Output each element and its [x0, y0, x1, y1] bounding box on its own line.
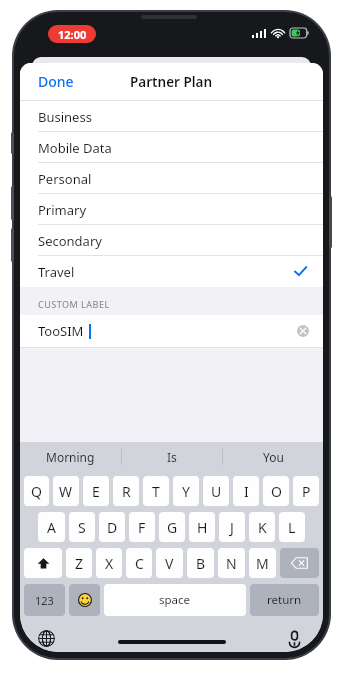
button[interactable]: H — [189, 512, 215, 542]
staticText: Q — [31, 482, 42, 501]
button[interactable]: Z — [66, 548, 92, 578]
staticText: T — [152, 482, 160, 501]
staticText: Is — [167, 449, 177, 465]
button[interactable]: 123 — [24, 584, 65, 616]
staticText: return — [267, 592, 302, 608]
staticText: 123 — [35, 593, 54, 608]
button[interactable]: Clear text — [297, 325, 309, 337]
button[interactable]: S — [69, 512, 95, 542]
button[interactable]: U — [203, 476, 229, 506]
staticText: Done — [38, 72, 74, 91]
button[interactable]: Q — [24, 476, 49, 506]
staticText: F — [138, 518, 146, 537]
staticText: A — [47, 518, 56, 537]
button[interactable]: N — [218, 548, 245, 578]
staticText: E — [92, 482, 100, 501]
button[interactable]: V — [156, 548, 183, 578]
staticText: Personal — [38, 170, 92, 188]
staticText: M — [256, 554, 269, 573]
staticText: W — [59, 482, 73, 501]
button[interactable]: D — [99, 512, 125, 542]
button[interactable]: Mobile Data — [20, 132, 323, 163]
button[interactable]: K — [249, 512, 275, 542]
staticText: P — [302, 482, 311, 501]
button[interactable]: Dictation — [286, 630, 303, 647]
staticText: 12:00 — [58, 27, 87, 42]
button[interactable]: TooSIM — [20, 315, 323, 347]
staticText: Z — [75, 554, 84, 573]
button[interactable]: Travel — [20, 256, 323, 287]
button[interactable]: O — [263, 476, 289, 506]
button[interactable]: M — [249, 548, 276, 578]
button[interactable]: X — [96, 548, 122, 578]
staticText: J — [230, 518, 234, 537]
staticText: You — [263, 449, 284, 465]
staticText: Partner Plan — [130, 73, 213, 91]
staticText: K — [258, 518, 267, 537]
staticText: Business — [38, 108, 92, 126]
button[interactable]: You — [223, 442, 323, 472]
button[interactable]: Business — [20, 101, 323, 132]
staticText: CUSTOM LABEL — [38, 298, 110, 310]
button[interactable]: Personal — [20, 163, 323, 194]
button[interactable]: Switch keyboard — [38, 630, 55, 647]
button[interactable]: Morning — [20, 442, 121, 472]
staticText: D — [107, 518, 118, 537]
button[interactable]: Shift — [24, 548, 62, 578]
button[interactable]: Done — [20, 65, 92, 98]
staticText: G — [167, 518, 178, 537]
button[interactable]: Is — [122, 442, 222, 472]
staticText: C — [135, 554, 144, 573]
button[interactable]: Y — [173, 476, 199, 506]
button[interactable]: P — [293, 476, 319, 506]
staticText: X — [105, 554, 114, 573]
staticText: Y — [182, 482, 190, 501]
button[interactable]: F — [129, 512, 155, 542]
staticText: space — [159, 592, 191, 608]
button[interactable]: space — [104, 584, 246, 616]
staticText: Morning — [46, 449, 95, 465]
button[interactable]: A — [38, 512, 65, 542]
staticText: Mobile Data — [38, 139, 112, 157]
button[interactable]: J — [219, 512, 245, 542]
button[interactable]: Emoji — [69, 584, 100, 616]
staticText: Travel — [38, 263, 75, 281]
staticText: R — [122, 482, 131, 501]
button[interactable]: return — [250, 584, 319, 616]
staticText: N — [226, 554, 237, 573]
staticText: O — [271, 482, 282, 501]
button[interactable]: T — [143, 476, 169, 506]
staticText: H — [197, 518, 208, 537]
staticText: Primary — [38, 201, 87, 219]
button[interactable]: Secondary — [20, 225, 323, 256]
staticText: V — [165, 554, 174, 573]
staticText: TooSIM — [38, 322, 84, 340]
staticText: L — [288, 518, 296, 537]
staticText: U — [211, 482, 222, 501]
button[interactable]: E — [83, 476, 109, 506]
staticText: S — [78, 518, 86, 537]
button[interactable]: G — [159, 512, 185, 542]
button[interactable]: I — [233, 476, 259, 506]
button[interactable]: B — [187, 548, 214, 578]
button[interactable]: L — [279, 512, 305, 542]
button[interactable]: R — [113, 476, 139, 506]
button[interactable]: Primary — [20, 194, 323, 225]
staticText: I — [244, 482, 249, 501]
button[interactable]: C — [126, 548, 152, 578]
staticText: B — [196, 554, 206, 573]
staticText: Secondary — [38, 232, 102, 250]
button[interactable]: W — [53, 476, 79, 506]
button[interactable]: Backspace — [280, 548, 319, 578]
